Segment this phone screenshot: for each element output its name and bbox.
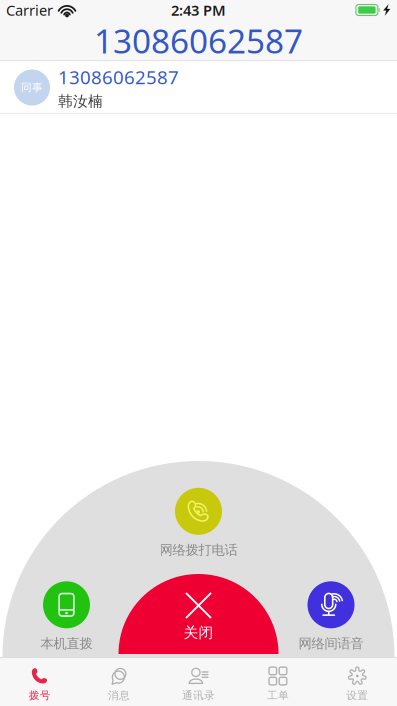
button[interactable]: 同事 [0,61,397,114]
staticText: 网络间语音 [298,635,363,652]
button[interactable]: 网络间语音 [298,581,363,652]
staticText: 13086062587 [94,18,303,63]
staticText: 关闭 [183,623,213,641]
staticText: Carrier [6,0,53,20]
button[interactable]: 本机直拨 [40,581,92,652]
button[interactable]: 消息 [79,657,159,706]
button[interactable]: 工单 [238,657,318,706]
staticText: 同事 [21,81,43,94]
button[interactable]: 拨号 [0,657,79,706]
staticText: 本机直拨 [40,635,92,652]
button[interactable]: 网络拨打电话 [159,488,237,558]
staticText: 网络拨打电话 [159,542,237,558]
staticText: 拨号 [29,689,51,702]
button[interactable]: 通讯录 [159,657,238,706]
button[interactable]: 关闭 [183,592,213,641]
button[interactable]: 设置 [318,657,397,706]
staticText: 工单 [267,689,289,702]
staticText: 通讯录 [182,689,215,702]
staticText: 13086062587 [58,65,179,89]
staticText: 2:43 PM [171,0,226,20]
staticText: 设置 [346,689,368,702]
staticText: 消息 [108,689,130,702]
staticText: 韩汝楠 [58,92,103,110]
